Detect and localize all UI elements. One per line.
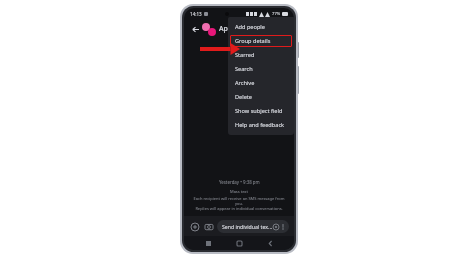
staticText: 14:13 [190, 11, 202, 17]
staticText: Archive [235, 79, 255, 87]
button[interactable]: Back [189, 23, 201, 35]
staticText: Each recipient will receive an SMS messa… [190, 196, 288, 206]
staticText: Yesterday • 9:38 pm [219, 179, 260, 185]
staticText: Add people [235, 23, 265, 31]
staticText: Send individual tex... [222, 223, 273, 230]
button[interactable]: Delete [230, 91, 292, 103]
button[interactable]: Send individual tex... [217, 220, 289, 233]
staticText: Search [235, 65, 253, 73]
button[interactable]: Back [263, 236, 277, 250]
staticText: Mass text [230, 189, 248, 194]
button[interactable]: Camera [203, 221, 214, 232]
staticText: Help and feedback [235, 121, 285, 129]
button[interactable]: Add people [230, 21, 292, 33]
staticText: Starred [235, 51, 255, 59]
button[interactable]: Starred [230, 49, 292, 61]
button[interactable]: Group details [230, 35, 292, 47]
button[interactable]: Attach [189, 221, 200, 232]
button[interactable]: Home [232, 236, 246, 250]
button[interactable]: Show subject field [230, 105, 292, 117]
staticText: Appuals [219, 24, 246, 34]
staticText: Group details [235, 37, 271, 45]
staticText: Show subject field [235, 107, 283, 115]
button[interactable]: Recents [201, 236, 215, 250]
button[interactable]: Search [230, 63, 292, 75]
staticText: Replies will appear in individual conver… [195, 206, 283, 211]
button[interactable]: Archive [230, 77, 292, 89]
staticText: Delete [235, 93, 253, 101]
button[interactable]: Help and feedback [230, 119, 292, 131]
staticText: 77% [272, 11, 281, 17]
